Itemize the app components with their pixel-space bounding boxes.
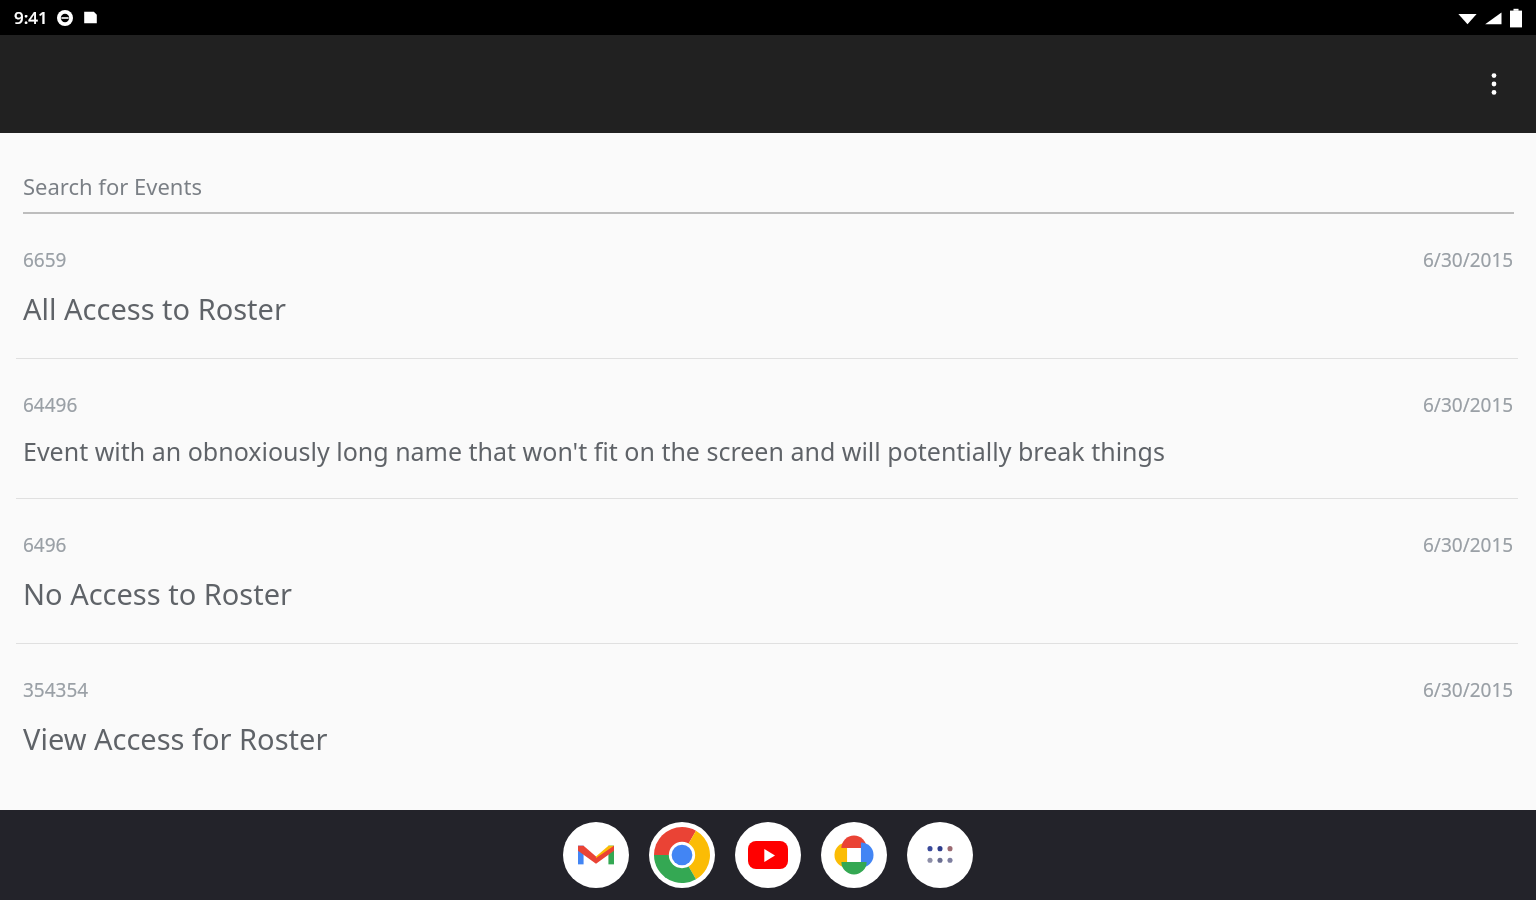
button[interactable]: Google Photos xyxy=(821,822,887,888)
staticText: Search for Events xyxy=(23,171,202,201)
button[interactable]: Gmail xyxy=(563,822,629,888)
staticText: 9:41 xyxy=(14,6,48,29)
staticText: No Access to Roster xyxy=(23,574,293,613)
staticText: 6/30/2015 xyxy=(1423,677,1514,703)
button[interactable]: YouTube xyxy=(735,822,801,888)
staticText: Event with an obnoxiously long name that… xyxy=(23,434,1165,468)
staticText: 6659 xyxy=(23,247,67,273)
staticText: All Access to Roster xyxy=(23,289,286,328)
staticText: 6/30/2015 xyxy=(1423,532,1514,558)
button[interactable]: 6659 xyxy=(0,214,1536,358)
button[interactable]: Search for Events xyxy=(0,133,1536,214)
button[interactable]: 354354 xyxy=(0,644,1536,788)
staticText: View Access for Roster xyxy=(23,719,328,758)
staticText: 64496 xyxy=(23,392,78,418)
staticText: 6/30/2015 xyxy=(1423,392,1514,418)
staticText: 6496 xyxy=(23,532,67,558)
button[interactable]: More options xyxy=(1466,56,1522,112)
staticText: 354354 xyxy=(23,677,89,703)
button[interactable]: 6496 xyxy=(0,499,1536,643)
staticText: 6/30/2015 xyxy=(1423,247,1514,273)
button[interactable]: Chrome xyxy=(649,822,715,888)
button[interactable]: 64496 xyxy=(0,359,1536,498)
button[interactable]: All apps xyxy=(907,822,973,888)
